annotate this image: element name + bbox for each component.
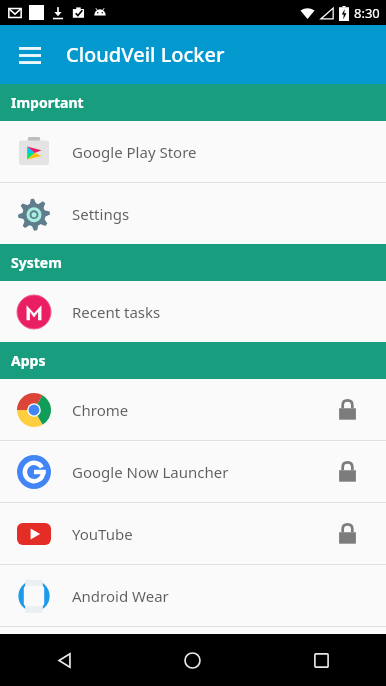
staticText: Chrome (72, 400, 337, 420)
staticText: Recent tasks (72, 302, 386, 322)
button[interactable]: Open navigation drawer (8, 33, 52, 77)
staticText: CloudVeil Locker (66, 41, 225, 68)
staticText: YouTube (72, 524, 337, 544)
button[interactable]: Settings (0, 183, 386, 244)
button[interactable]: Recent apps (257, 634, 386, 686)
button[interactable]: Google Now Launcher (0, 441, 386, 502)
button[interactable]: Google Play Store (0, 121, 386, 182)
button[interactable]: Android Wear (0, 565, 386, 626)
button[interactable]: Chrome (0, 379, 386, 440)
staticText: Google Play Store (72, 142, 386, 162)
staticText: System (11, 253, 62, 272)
staticText: 8:30 (354, 4, 380, 22)
button[interactable]: YouTube (0, 503, 386, 564)
staticText: Settings (72, 204, 386, 224)
button[interactable]: Back (0, 634, 128, 686)
staticText: Important (11, 93, 84, 112)
staticText: Apps (11, 351, 46, 370)
button[interactable]: Home (128, 634, 257, 686)
button[interactable]: Recent tasks (0, 281, 386, 342)
staticText: Google Now Launcher (72, 462, 337, 482)
staticText: Android Wear (72, 586, 386, 606)
